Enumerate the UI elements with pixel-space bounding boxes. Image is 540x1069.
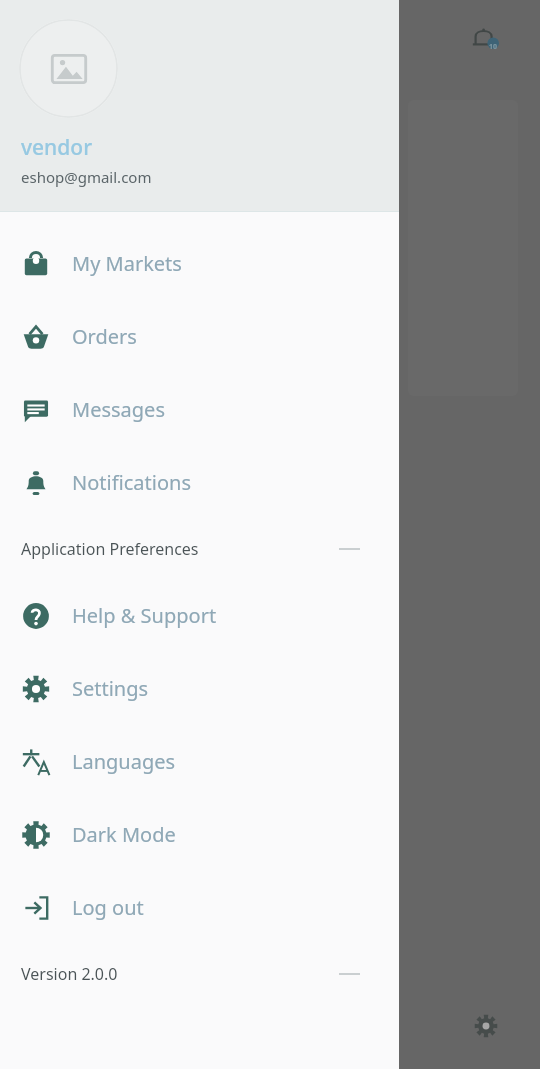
staticText: Help & Support: [72, 602, 217, 629]
staticText: Dark Mode: [72, 821, 176, 848]
staticText: Orders: [72, 323, 137, 350]
staticText: Messages: [72, 396, 165, 423]
staticText: eshop@gmail.com: [21, 167, 152, 187]
button[interactable]: Orders: [0, 300, 399, 373]
button[interactable]: Dark Mode: [0, 798, 399, 871]
staticText: Application Preferences: [21, 538, 199, 560]
button[interactable]: [0, 0, 540, 1069]
staticText: Notifications: [72, 469, 191, 496]
staticText: My Markets: [72, 250, 182, 277]
staticText: Languages: [72, 748, 176, 775]
button[interactable]: Notifications: [462, 18, 510, 66]
button[interactable]: Settings: [0, 652, 399, 725]
button[interactable]: Settings: [464, 1004, 508, 1048]
button[interactable]: Help & Support: [0, 579, 399, 652]
staticText: Version 2.0.0: [21, 963, 118, 985]
button[interactable]: My Markets: [0, 227, 399, 300]
button[interactable]: Languages: [0, 725, 399, 798]
staticText: 10: [489, 42, 498, 52]
staticText: Settings: [72, 675, 149, 702]
button[interactable]: Log out: [0, 871, 399, 944]
button[interactable]: Messages: [0, 373, 399, 446]
staticText: Log out: [72, 894, 144, 921]
button[interactable]: Notifications: [0, 446, 399, 519]
button[interactable]: vendor: [0, 0, 399, 212]
staticText: vendor: [21, 133, 93, 162]
